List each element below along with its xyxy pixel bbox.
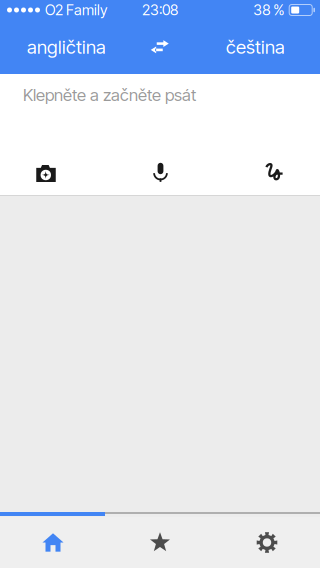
staticText: angličtina: [27, 36, 106, 58]
button[interactable]: Klepněte a začněte psát: [0, 72, 320, 146]
button[interactable]: Saved phrases: [106, 517, 214, 568]
button[interactable]: Swap languages: [131, 20, 189, 74]
button[interactable]: Settings: [214, 517, 320, 568]
button[interactable]: Home: [0, 517, 106, 568]
button[interactable]: čeština: [189, 20, 320, 74]
button[interactable]: Translate with voice: [92, 146, 229, 197]
staticText: 23:08: [142, 1, 178, 19]
button[interactable]: Handwriting input: [229, 146, 320, 197]
staticText: čeština: [226, 36, 285, 58]
button[interactable]: angličtina: [0, 20, 131, 74]
staticText: O2 Family: [45, 1, 107, 19]
staticText: 38 %: [253, 1, 284, 19]
button[interactable]: Translate with camera: [0, 146, 92, 197]
staticText: Klepněte a začněte psát: [23, 85, 196, 105]
